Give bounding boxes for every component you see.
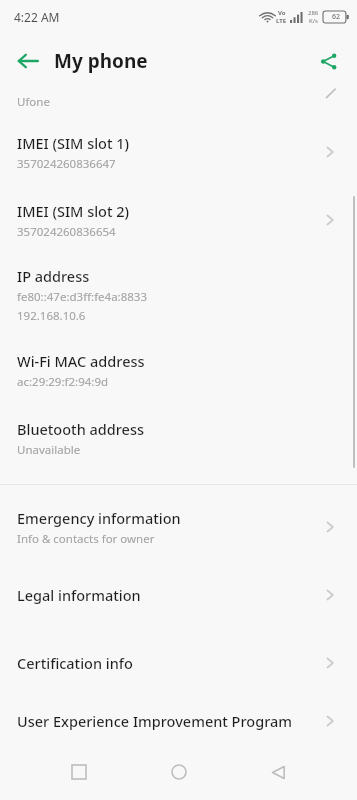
staticText: Info & contacts for owner — [17, 531, 155, 547]
button[interactable]: Bluetooth address — [0, 404, 357, 472]
staticText: 357024260836647 — [17, 156, 116, 172]
staticText: Bluetooth address — [17, 419, 145, 439]
button[interactable]: IMEI (SIM slot 1) — [0, 118, 357, 186]
staticText: Unavailable — [17, 442, 81, 458]
staticText: 4:22 AM — [14, 9, 60, 25]
staticText: LTE — [276, 17, 287, 25]
button[interactable]: Legal information — [0, 561, 357, 629]
staticText: Certification info — [17, 653, 133, 673]
button[interactable]: IP address — [0, 254, 357, 336]
button[interactable]: User Experience Improvement Program — [0, 697, 357, 744]
staticText: Legal information — [17, 585, 141, 605]
button[interactable]: Wi-Fi MAC address — [0, 336, 357, 404]
staticText: 192.168.10.6 — [17, 308, 86, 324]
staticText: fe80::47e:d3ff:fe4a:8833 — [17, 289, 147, 305]
staticText: Emergency information — [17, 508, 181, 528]
button[interactable]: Emergency information — [0, 493, 357, 561]
button[interactable]: Recents — [62, 755, 96, 789]
staticText: Vo — [278, 9, 286, 17]
staticText: Wi-Fi MAC address — [17, 351, 145, 371]
staticText: Ufone — [17, 94, 50, 110]
staticText: 286 — [308, 9, 319, 17]
staticText: IMEI (SIM slot 2) — [17, 201, 130, 221]
staticText: User Experience Improvement Program — [17, 711, 293, 731]
staticText: K/s — [309, 17, 318, 25]
button[interactable]: Back — [261, 755, 295, 789]
button[interactable]: Back — [6, 39, 50, 83]
button[interactable]: Home — [162, 755, 196, 789]
staticText: 62 — [332, 12, 341, 22]
staticText: ac:29:29:f2:94:9d — [17, 374, 109, 390]
button[interactable]: Share — [307, 40, 349, 82]
staticText: IMEI (SIM slot 1) — [17, 133, 130, 153]
button[interactable]: IMEI (SIM slot 2) — [0, 186, 357, 254]
staticText: IP address — [17, 266, 90, 286]
staticText: 357024260836654 — [17, 224, 116, 240]
button[interactable]: Certification info — [0, 629, 357, 697]
staticText: My phone — [54, 48, 148, 74]
button[interactable]: Ufone — [0, 88, 357, 118]
